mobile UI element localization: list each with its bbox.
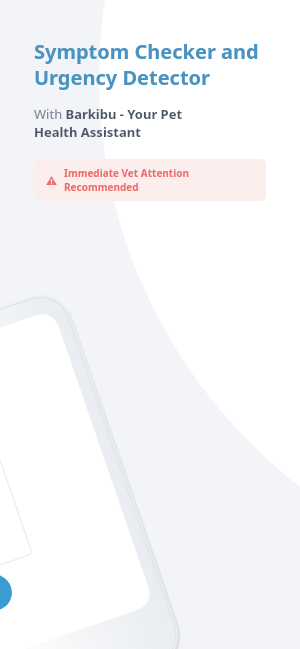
staticText: Symptom Checker and Urgency Detector xyxy=(34,38,259,91)
other: Warning xyxy=(46,175,57,186)
button[interactable]: Warning xyxy=(34,159,266,201)
staticText: Immediate Vet Attention Recommended xyxy=(64,166,254,194)
staticText: With Barkibu - Your Pet Health Assistant xyxy=(34,105,183,141)
